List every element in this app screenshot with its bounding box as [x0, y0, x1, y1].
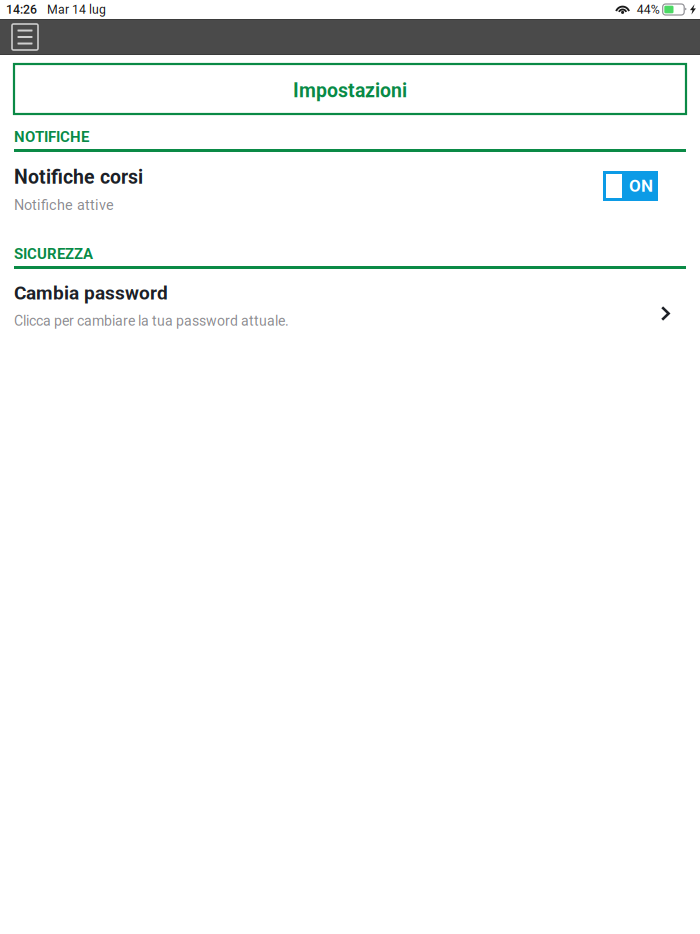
- staticText: Clicca per cambiare la tua password attu…: [14, 313, 289, 329]
- staticText: Cambia password: [14, 282, 168, 304]
- staticText: Notifiche corsi: [14, 166, 143, 188]
- staticText: NOTIFICHE: [14, 128, 89, 146]
- staticText: Mar 14 lug: [47, 2, 106, 17]
- button[interactable]: Cambia password: [14, 283, 686, 329]
- staticText: Notifiche attive: [14, 197, 114, 213]
- staticText: 44%: [637, 2, 660, 17]
- button[interactable]: Impostazioni: [14, 64, 686, 114]
- button[interactable]: Menu: [12, 24, 38, 50]
- staticText: 14:26: [6, 2, 37, 17]
- staticText: ON: [629, 176, 653, 196]
- staticText: SICUREZZA: [14, 245, 93, 263]
- button[interactable]: Notifiche corsi, attivo: [603, 171, 658, 201]
- staticText: Impostazioni: [293, 79, 407, 102]
